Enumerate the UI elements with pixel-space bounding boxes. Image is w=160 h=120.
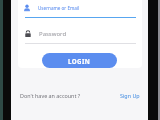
button[interactable]: Password (23, 26, 136, 42)
other: Username (23, 4, 31, 12)
other: Password (24, 30, 32, 38)
staticText: Password (39, 30, 67, 38)
button[interactable]: Username (23, 0, 136, 16)
staticText: Don't have an account ? (20, 92, 81, 99)
staticText: Sign Up (120, 92, 140, 99)
button[interactable]: Sign Up (120, 92, 140, 99)
staticText: LOGIN (68, 57, 91, 65)
button[interactable]: LOGIN (42, 53, 117, 68)
staticText: Username or Email (38, 5, 80, 11)
